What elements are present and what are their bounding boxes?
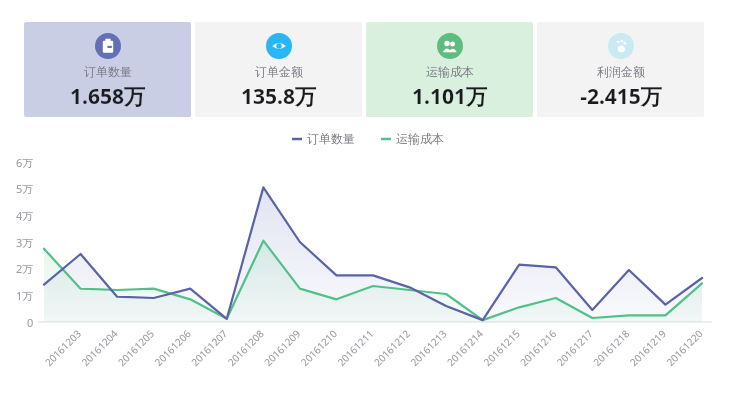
staticText: 运输成本 <box>426 64 474 79</box>
button[interactable]: 订单金额 <box>195 22 362 117</box>
button[interactable]: 订单数量 <box>292 131 355 146</box>
staticText: 利润金额 <box>597 64 645 79</box>
staticText: 订单数量 <box>307 131 355 146</box>
button[interactable]: 利润金额 <box>537 22 704 117</box>
staticText: 1.658万 <box>70 82 145 111</box>
staticText: 订单金额 <box>255 64 303 79</box>
button[interactable]: 订单数量 <box>24 22 191 117</box>
staticText: 订单数量 <box>84 64 132 79</box>
other: 订单数量 <box>95 33 121 59</box>
staticText: -2.415万 <box>580 82 662 111</box>
other: 运输成本 <box>437 33 463 59</box>
button[interactable]: 运输成本 <box>381 131 444 146</box>
button[interactable]: 运输成本 <box>366 22 533 117</box>
other: 利润金额 <box>608 33 634 59</box>
staticText: 1.101万 <box>412 82 487 111</box>
staticText: 135.8万 <box>241 82 316 111</box>
staticText: 运输成本 <box>396 131 444 146</box>
other: 订单金额 <box>266 33 292 59</box>
